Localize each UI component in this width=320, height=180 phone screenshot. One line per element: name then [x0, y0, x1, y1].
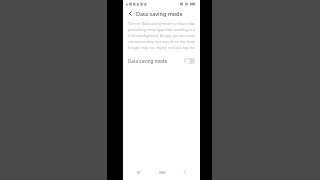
- staticText: Data saving mode: [128, 58, 168, 64]
- staticText: can access data, but may do so less freq…: [128, 39, 195, 44]
- button[interactable]: Back: [177, 167, 193, 177]
- staticText: preventing some apps from sending or rec…: [128, 27, 195, 32]
- button[interactable]: Back: [126, 9, 135, 18]
- staticText: Turn on Data saving mode to reduce data …: [128, 21, 195, 26]
- staticText: Images may not display until you tap the…: [128, 45, 195, 50]
- button[interactable]: Recents: [130, 167, 146, 177]
- staticText: in the background. An app you are curren…: [128, 33, 195, 38]
- button[interactable]: Home: [154, 167, 170, 177]
- button[interactable]: Data saving mode: [123, 55, 200, 67]
- staticText: Data saving mode: [136, 10, 183, 17]
